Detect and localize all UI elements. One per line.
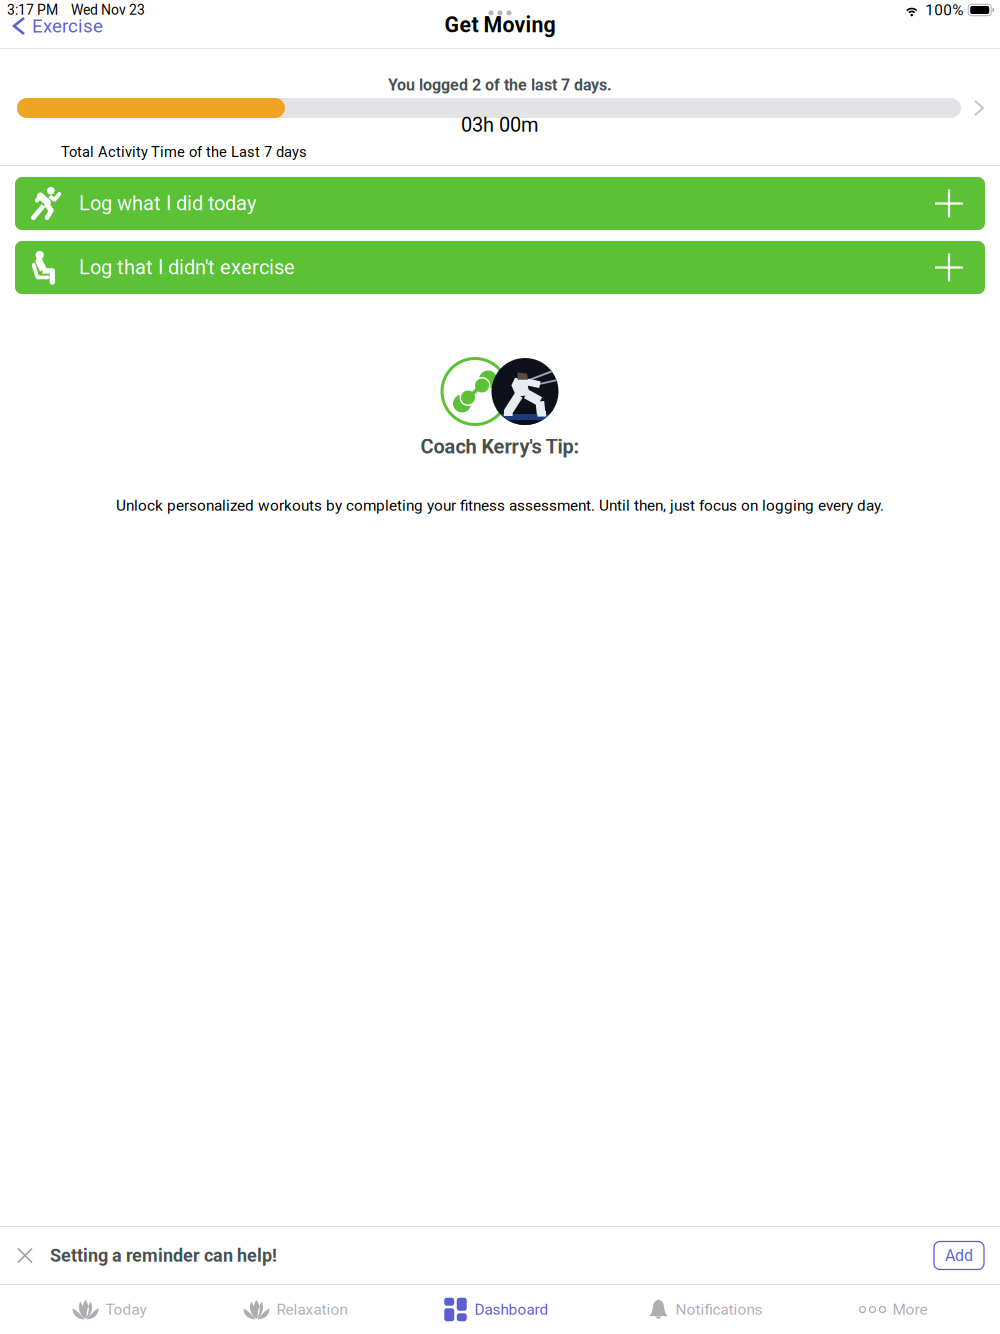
staticText: Dashboard [474, 1300, 548, 1318]
button[interactable]: Activity details [961, 91, 997, 125]
staticText: 03h 00m [461, 113, 539, 137]
button[interactable]: Log that I didn't exercise [15, 241, 985, 294]
button[interactable]: Notifications [648, 1285, 762, 1334]
staticText: Today [105, 1300, 146, 1318]
staticText: Get Moving [444, 12, 555, 37]
button[interactable]: Add [934, 1241, 984, 1269]
staticText: Add [945, 1246, 973, 1265]
staticText: Total Activity Time of the Last 7 days [61, 143, 307, 161]
button[interactable]: More [859, 1285, 927, 1334]
staticText: Unlock personalized workouts by completi… [116, 496, 884, 514]
button[interactable]: Relaxation [243, 1285, 347, 1334]
button[interactable]: Log what I did today [15, 177, 985, 230]
staticText: Coach Kerry's Tip: [420, 435, 579, 458]
staticText: 100% [925, 1, 963, 19]
button[interactable]: Dashboard [443, 1285, 548, 1334]
staticText: You logged 2 of the last 7 days. [388, 76, 612, 94]
button[interactable]: Exercise [14, 12, 274, 40]
staticText: Log what I did today [79, 192, 256, 215]
staticText: Exercise [32, 15, 103, 37]
staticText: Setting a reminder can help! [50, 1245, 277, 1266]
staticText: More [892, 1300, 927, 1318]
button[interactable]: Dismiss [0, 1228, 50, 1282]
button[interactable]: Today [72, 1285, 146, 1334]
staticText: Log that I didn't exercise [79, 256, 295, 279]
staticText: Notifications [675, 1300, 762, 1318]
staticText: Relaxation [276, 1300, 347, 1318]
staticText: 3:17 PM [7, 2, 58, 18]
staticText: Wed Nov 23 [71, 2, 145, 18]
